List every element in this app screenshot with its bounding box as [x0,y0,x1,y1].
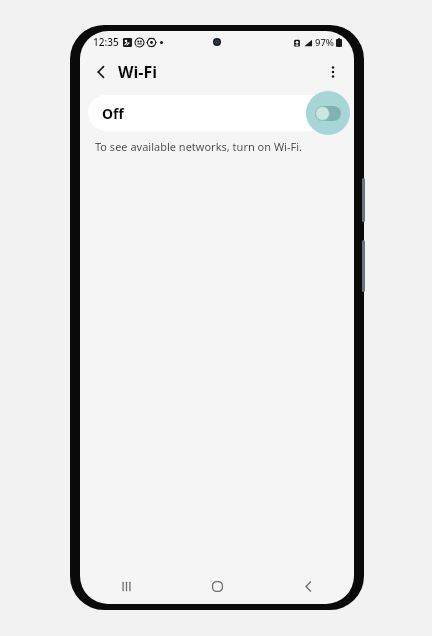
button[interactable]: Home [172,568,263,604]
staticText: To see available networks, turn on Wi-Fi… [95,139,302,154]
staticText: Wi-Fi [118,61,157,83]
staticText: Off [102,104,124,123]
button[interactable]: Back [263,568,354,604]
button[interactable]: Back [86,57,116,87]
button[interactable]: Recents [80,568,172,604]
button[interactable]: Off [88,95,346,131]
staticText: 97% [315,36,334,49]
staticText: 12:35 [93,35,119,49]
button[interactable]: Wi-Fi toggle [306,91,350,135]
button[interactable]: More options [318,57,348,87]
